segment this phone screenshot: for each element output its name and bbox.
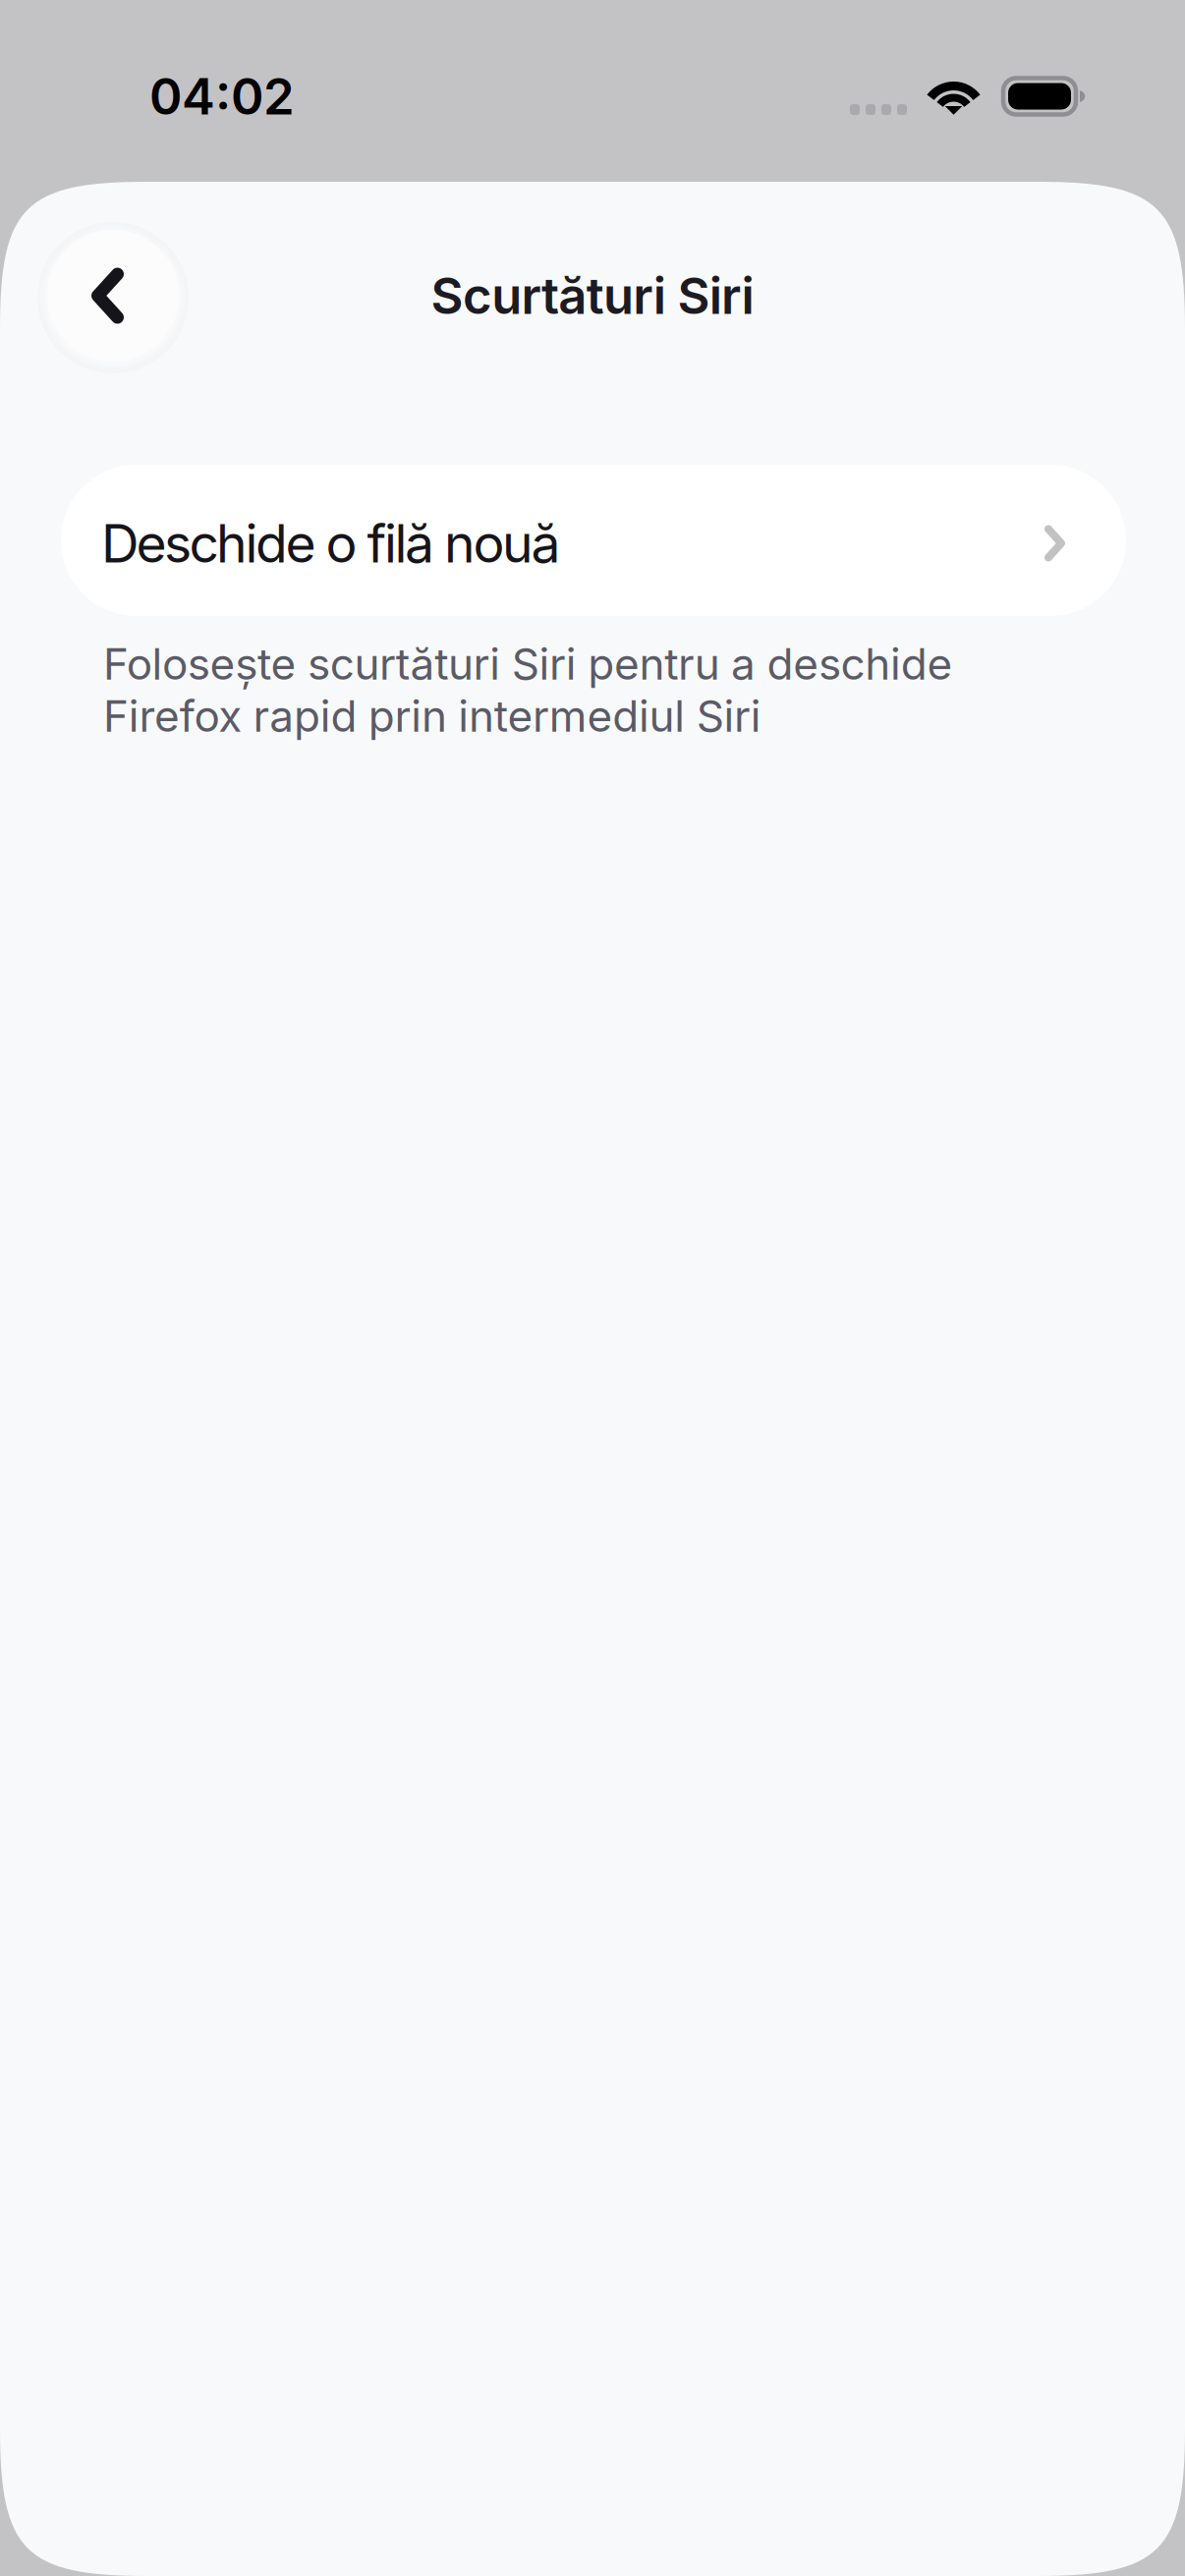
staticText: Scurtături Siri (431, 266, 754, 326)
staticText: Folosește scurtături Siri pentru a desch… (103, 638, 953, 742)
button[interactable]: Înapoi (35, 218, 191, 373)
staticText: 04:02 (149, 66, 295, 126)
staticText: Deschide o filă nouă (101, 512, 561, 575)
button[interactable]: Deschide o filă nouă (61, 465, 1126, 616)
